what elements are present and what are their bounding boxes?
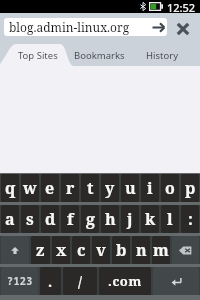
staticText: f <box>67 208 74 230</box>
button[interactable]: Top Sites <box>0 44 75 66</box>
staticText: p <box>185 177 196 199</box>
staticText: g <box>86 208 95 230</box>
staticText: y <box>105 177 115 199</box>
button[interactable]: q <box>1 174 19 202</box>
button[interactable]: j <box>121 205 139 233</box>
staticText: .com <box>108 272 142 290</box>
staticText: Top Sites <box>18 49 58 62</box>
staticText: 12:52 <box>167 0 196 13</box>
button[interactable]: Close <box>173 19 193 39</box>
button[interactable]: s <box>21 205 39 233</box>
button[interactable]: u <box>121 174 139 202</box>
button[interactable]: l <box>161 205 179 233</box>
button[interactable]: o <box>161 174 179 202</box>
button[interactable]: .com <box>99 267 151 295</box>
button[interactable]: b <box>112 236 130 264</box>
button[interactable]: h <box>101 205 119 233</box>
button[interactable]: Shift <box>1 236 29 264</box>
button[interactable]: Enter <box>153 267 199 295</box>
staticText: o <box>165 177 175 199</box>
staticText: r <box>66 177 75 199</box>
staticText: q <box>5 177 16 199</box>
staticText: k <box>145 208 156 230</box>
button[interactable]: . <box>40 267 61 295</box>
button[interactable]: Go <box>151 18 166 36</box>
staticText: b <box>116 239 127 261</box>
button[interactable]: a <box>1 205 19 233</box>
staticText: History <box>146 49 178 62</box>
button[interactable]: Backspace <box>172 236 199 264</box>
staticText: . <box>48 272 53 291</box>
button[interactable]: i <box>141 174 159 202</box>
button[interactable]: History <box>124 44 200 66</box>
staticText: / <box>78 272 83 291</box>
button[interactable]: x <box>52 236 70 264</box>
button[interactable]: z <box>31 236 50 264</box>
staticText: i <box>147 177 153 199</box>
staticText: Bookmarks <box>74 49 125 62</box>
button[interactable]: t <box>81 174 99 202</box>
button[interactable]: ?123 <box>1 267 38 295</box>
button[interactable]: w <box>21 174 39 202</box>
staticText: u <box>125 177 136 199</box>
staticText: a <box>5 208 15 230</box>
staticText: w <box>23 177 37 199</box>
staticText: t <box>87 177 94 199</box>
button[interactable]: / <box>63 267 97 295</box>
staticText: h <box>105 208 116 230</box>
staticText: d <box>45 208 56 230</box>
staticText: x <box>56 239 67 261</box>
staticText: j <box>127 208 133 230</box>
button[interactable]: : <box>181 205 199 233</box>
staticText: z <box>36 239 45 261</box>
staticText: c <box>77 239 86 261</box>
button[interactable]: p <box>181 174 199 202</box>
button[interactable]: r <box>61 174 79 202</box>
staticText: n <box>136 239 147 261</box>
button[interactable]: Bookmarks <box>75 44 124 66</box>
staticText: s <box>26 208 34 230</box>
button[interactable]: m <box>152 236 170 264</box>
button[interactable]: e <box>41 174 59 202</box>
button[interactable]: d <box>41 205 59 233</box>
button[interactable]: v <box>92 236 110 264</box>
button[interactable]: g <box>81 205 99 233</box>
staticText: ?123 <box>7 274 33 288</box>
staticText: : <box>188 208 193 230</box>
staticText: blog.admin-linux.org <box>9 19 130 35</box>
button[interactable]: k <box>141 205 159 233</box>
staticText: e <box>45 177 55 199</box>
button[interactable]: y <box>101 174 119 202</box>
staticText: v <box>96 239 106 261</box>
button[interactable]: n <box>132 236 150 264</box>
button[interactable]: blog.admin-linux.org <box>4 18 167 36</box>
staticText: m <box>153 239 169 261</box>
button[interactable]: c <box>72 236 90 264</box>
staticText: l <box>167 208 173 230</box>
button[interactable]: f <box>61 205 79 233</box>
